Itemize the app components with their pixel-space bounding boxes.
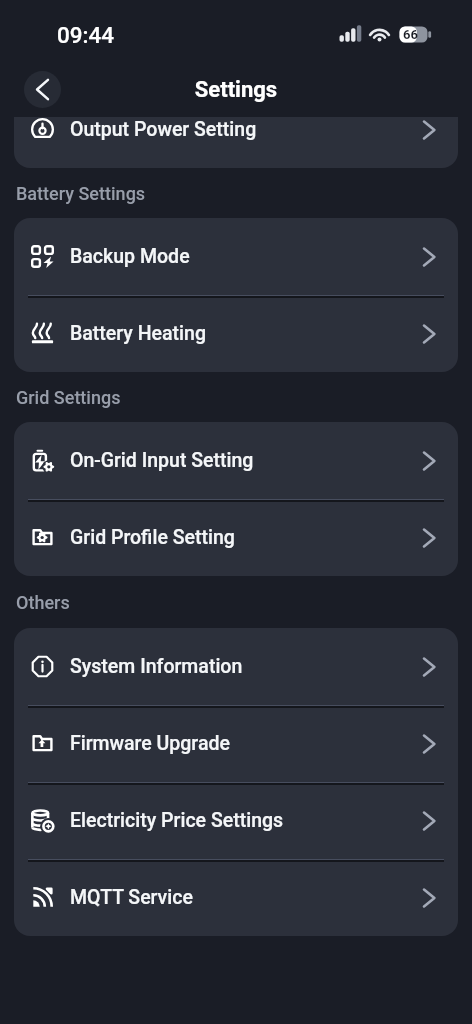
button[interactable]: System Information bbox=[14, 628, 458, 705]
staticText: Output Power Setting bbox=[70, 118, 257, 141]
staticText: Settings bbox=[0, 77, 472, 103]
staticText: System Information bbox=[70, 655, 243, 678]
button[interactable]: Grid Profile Setting bbox=[14, 499, 458, 576]
staticText: Others bbox=[16, 592, 70, 613]
staticText: 66 bbox=[403, 27, 418, 42]
button[interactable]: Battery Heating bbox=[14, 295, 458, 372]
staticText: MQTT Service bbox=[70, 886, 193, 909]
button[interactable]: On-Grid Input Setting bbox=[14, 422, 458, 499]
staticText: Battery Settings bbox=[16, 183, 146, 204]
button[interactable]: Back bbox=[24, 71, 61, 108]
staticText: Firmware Upgrade bbox=[70, 732, 230, 755]
button[interactable]: Electricity Price Settings bbox=[14, 782, 458, 859]
staticText: Electricity Price Settings bbox=[70, 809, 284, 832]
button[interactable]: MQTT Service bbox=[14, 859, 458, 936]
staticText: Grid Settings bbox=[16, 387, 121, 408]
staticText: Battery Heating bbox=[70, 322, 206, 345]
staticText: Grid Profile Setting bbox=[70, 526, 235, 549]
staticText: Backup Mode bbox=[70, 245, 190, 268]
button[interactable]: Output Power Setting bbox=[14, 117, 458, 168]
staticText: On-Grid Input Setting bbox=[70, 449, 254, 472]
button[interactable]: Backup Mode bbox=[14, 218, 458, 295]
button[interactable]: Firmware Upgrade bbox=[14, 705, 458, 782]
staticText: 09:44 bbox=[57, 22, 115, 48]
